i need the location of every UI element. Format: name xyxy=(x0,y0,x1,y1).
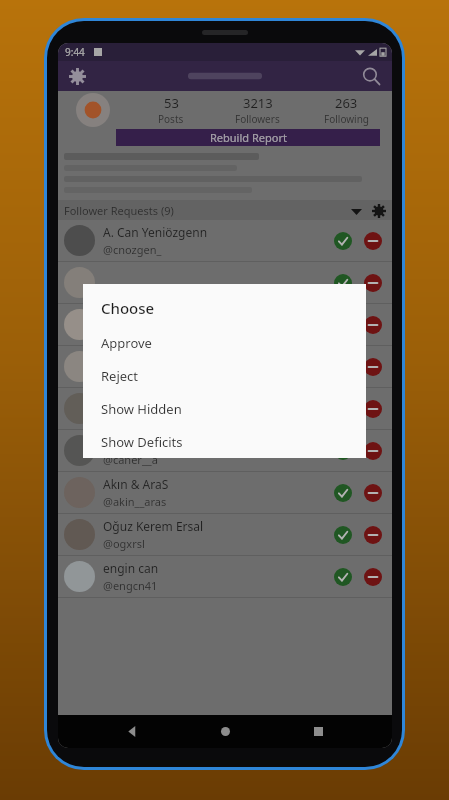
button[interactable]: Approve xyxy=(330,522,356,548)
staticText: @ogxrsl xyxy=(103,536,145,551)
button[interactable]: Reject xyxy=(360,354,386,380)
button[interactable]: Approve xyxy=(330,228,356,254)
staticText: Show Deficits xyxy=(101,433,183,451)
button[interactable]: A. Can Yeniözgenn xyxy=(58,220,392,261)
staticText: @caner__a xyxy=(103,452,158,467)
staticText: Follower Requests (9) xyxy=(64,203,174,218)
button[interactable]: Approve xyxy=(58,388,392,429)
button[interactable]: Reject xyxy=(360,564,386,590)
button[interactable]: Approve xyxy=(330,270,356,296)
staticText: Reject xyxy=(101,367,139,385)
staticText: A. Can Yeniözgenn xyxy=(103,224,208,240)
staticText: 3213 xyxy=(243,94,273,112)
button[interactable]: Expand xyxy=(348,203,364,219)
staticText: engin can xyxy=(103,560,159,576)
staticText: 53 xyxy=(164,94,179,112)
button[interactable]: Approve xyxy=(58,262,392,303)
staticText: Choose xyxy=(101,298,155,318)
button[interactable]: Reject xyxy=(360,522,386,548)
button[interactable]: Show Hidden xyxy=(83,392,366,425)
button[interactable]: Approve xyxy=(330,438,356,464)
staticText: @akin__aras xyxy=(103,494,167,509)
button[interactable]: Reject xyxy=(360,228,386,254)
button[interactable]: Approve xyxy=(83,326,366,359)
staticText: Show Hidden xyxy=(101,400,182,418)
staticText: 263 xyxy=(335,94,358,112)
button[interactable]: Reject xyxy=(83,359,366,392)
button[interactable]: Approve xyxy=(58,346,392,387)
button[interactable]: Show Deficits xyxy=(83,425,366,458)
button[interactable]: Approve xyxy=(330,480,356,506)
button[interactable]: 53 xyxy=(128,94,214,126)
staticText: Oğuz Kerem Ersal xyxy=(103,518,204,534)
button[interactable]: Settings xyxy=(58,61,392,91)
staticText: Following xyxy=(324,112,370,126)
staticText: Posts xyxy=(158,112,184,126)
staticText: Followers xyxy=(235,112,280,126)
button[interactable]: Follower Requests (9) xyxy=(58,200,392,220)
button[interactable]: Reject xyxy=(360,438,386,464)
staticText: Approve xyxy=(101,334,152,352)
button[interactable]: Reject xyxy=(360,270,386,296)
button[interactable]: Reject xyxy=(360,312,386,338)
button[interactable]: Recent apps xyxy=(299,715,337,748)
staticText: Akın & AraS xyxy=(103,476,169,492)
button[interactable]: Rebuild Report xyxy=(116,129,380,146)
staticText: Rebuild Report xyxy=(210,130,287,145)
button[interactable]: Reject xyxy=(360,480,386,506)
button[interactable]: Approve xyxy=(58,304,392,345)
staticText: caner xyxy=(103,434,135,450)
button[interactable]: 3213 xyxy=(214,94,301,126)
button[interactable] xyxy=(76,93,110,127)
button[interactable]: Oğuz Kerem Ersal xyxy=(58,514,392,555)
button[interactable]: 263 xyxy=(301,94,392,126)
button[interactable]: Akın & AraS xyxy=(58,472,392,513)
button[interactable]: Approve xyxy=(330,564,356,590)
button[interactable]: Search xyxy=(359,64,383,88)
button[interactable]: Back xyxy=(113,715,151,748)
button[interactable]: List settings xyxy=(370,202,387,219)
button[interactable]: Settings xyxy=(66,65,88,87)
button[interactable]: Home xyxy=(206,715,244,748)
button[interactable]: caner xyxy=(58,430,392,471)
staticText: @cnozgen_ xyxy=(103,242,162,257)
staticText: @engcn41 xyxy=(103,578,158,593)
button[interactable]: Reject xyxy=(360,396,386,422)
staticText: 9:44 xyxy=(65,45,85,59)
button[interactable]: engin can xyxy=(58,556,392,597)
